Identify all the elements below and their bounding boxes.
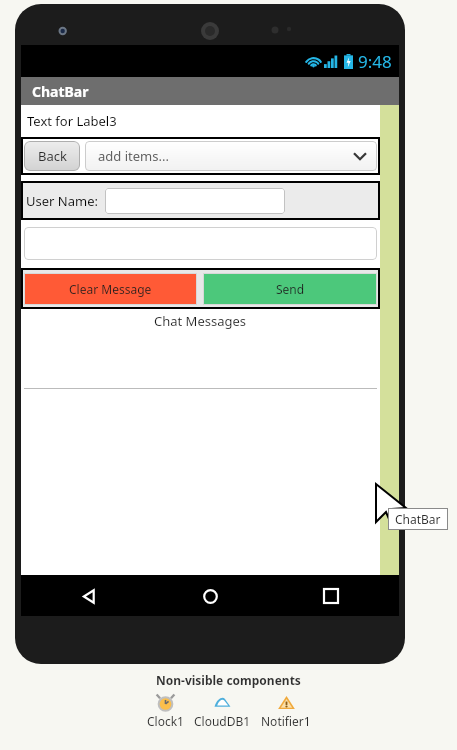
button[interactable]: Recents <box>315 580 347 612</box>
staticText: Clear Message <box>69 281 152 297</box>
button[interactable]: Back <box>24 141 80 171</box>
staticText: Text for Label3 <box>27 112 117 130</box>
button[interactable]: Clear Message <box>24 273 197 305</box>
staticText: ChatBar <box>32 82 89 101</box>
button[interactable]: Clock1 <box>145 692 186 729</box>
button[interactable]: add items... <box>85 141 377 171</box>
staticText: Back <box>38 147 67 165</box>
button[interactable] <box>105 188 285 214</box>
staticText: Non-visible components <box>156 672 301 688</box>
button[interactable] <box>24 227 377 260</box>
staticText: Notifier1 <box>261 713 311 729</box>
staticText: Chat Messages <box>154 312 247 330</box>
staticText: Send <box>276 281 305 297</box>
staticText: User Name: <box>26 192 98 210</box>
button[interactable]: Notifier1 <box>259 692 313 729</box>
button[interactable]: Home <box>194 580 226 612</box>
button[interactable]: Send <box>203 273 377 305</box>
staticText: add items... <box>98 147 169 165</box>
staticText: Clock1 <box>147 713 184 729</box>
button[interactable]: CloudDB1 <box>192 692 253 729</box>
staticText: 9:48 <box>358 50 392 73</box>
staticText: CloudDB1 <box>194 713 251 729</box>
button[interactable]: Back <box>73 580 105 612</box>
staticText: ChatBar <box>395 511 441 527</box>
